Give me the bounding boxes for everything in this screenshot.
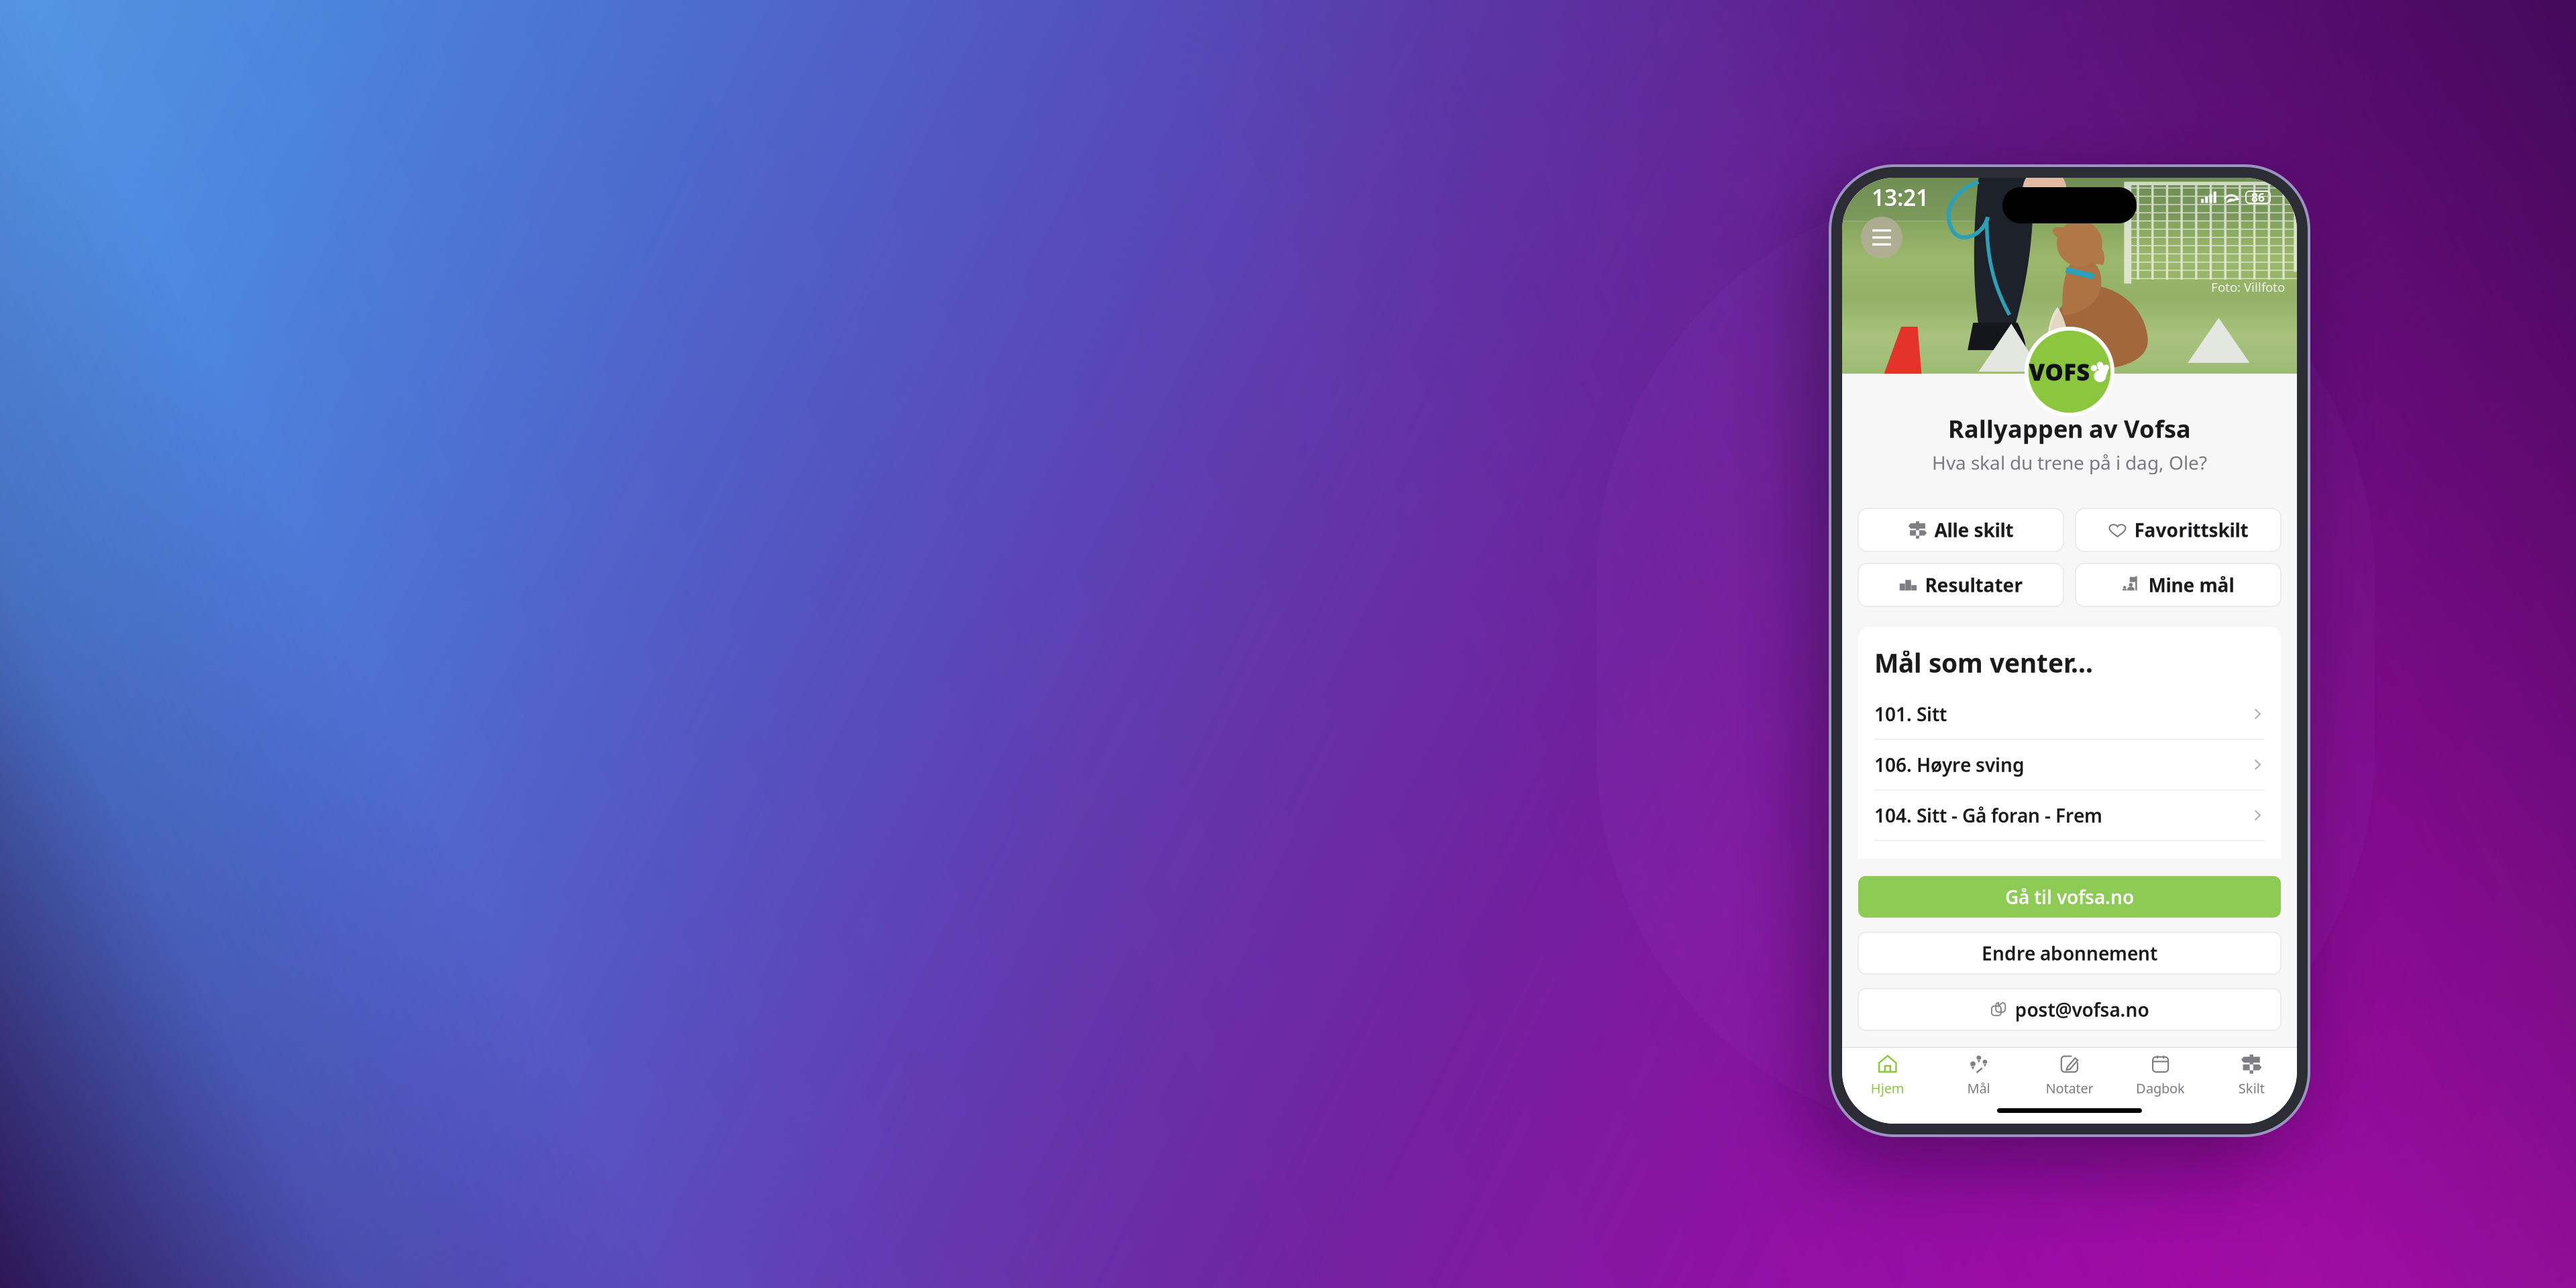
button[interactable]: Alle skilt [1858, 508, 2063, 551]
staticText: 106. Høyre sving [1874, 752, 2025, 777]
button[interactable]: Resultater [1858, 563, 2063, 606]
button[interactable]: 101. Sitt [1858, 689, 2281, 740]
button[interactable]: Skilt [2206, 1048, 2297, 1103]
button[interactable]: Dagbok [2115, 1048, 2206, 1103]
button[interactable]: Favorittskilt [2076, 508, 2281, 551]
button[interactable]: post@vofsa.no [1858, 989, 2281, 1030]
staticText: 104. Sitt - Gå foran - Frem [1874, 803, 2102, 828]
button[interactable]: Menu [1861, 217, 1902, 258]
staticText: Mål som venter... [1874, 645, 2093, 680]
staticText: Resultater [1925, 572, 2023, 597]
staticText: Endre abonnement [1982, 941, 2157, 966]
staticText: Gå til vofsa.no [2005, 884, 2134, 909]
staticText: 13:21 [1872, 182, 1929, 212]
staticText: Alle skilt [1934, 517, 2014, 542]
button[interactable]: Gå til vofsa.no [1858, 876, 2281, 918]
staticText: VOFS [2029, 356, 2090, 387]
staticText: Hjem [1871, 1079, 1904, 1097]
button[interactable]: 106. Høyre sving [1858, 740, 2281, 790]
button[interactable]: Mine mål [2076, 563, 2281, 606]
staticText: Favorittskilt [2134, 517, 2248, 542]
staticText: post@vofsa.no [2015, 997, 2149, 1022]
button[interactable]: 104. Sitt - Gå foran - Frem [1858, 790, 2281, 841]
staticText: Notater [2046, 1079, 2093, 1097]
button[interactable]: Endre abonnement [1858, 932, 2281, 974]
staticText: Skilt [2238, 1079, 2265, 1097]
button[interactable]: Notater [2024, 1048, 2115, 1103]
button[interactable]: Hjem [1842, 1048, 1933, 1103]
staticText: 101. Sitt [1874, 701, 1947, 726]
staticText: Foto: Villfoto [2211, 279, 2285, 295]
staticText: Dagbok [2136, 1079, 2185, 1097]
staticText: 86 [2251, 190, 2265, 205]
staticText: Hva skal du trene på i dag, Ole? [1932, 450, 2207, 475]
staticText: Mine mål [2148, 572, 2234, 597]
staticText: Mål [1967, 1079, 1990, 1097]
button[interactable]: Mål [1933, 1048, 2024, 1103]
staticText: Rallyappen av Vofsa [1948, 413, 2191, 445]
